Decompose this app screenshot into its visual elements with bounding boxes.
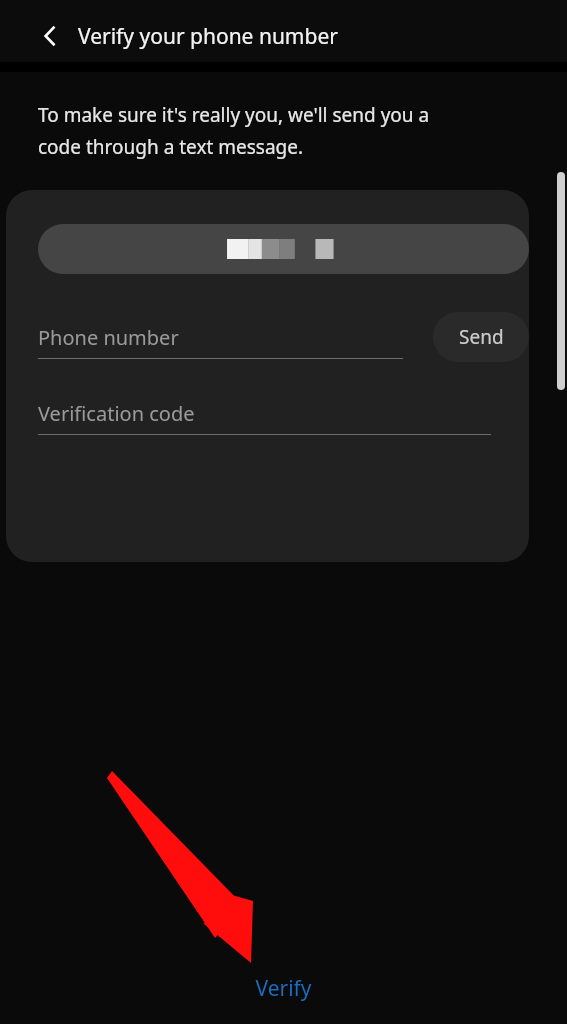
button[interactable]: Country selector <box>38 224 529 274</box>
button[interactable]: Verify <box>0 952 567 1024</box>
staticText: To make sure it's really you, we'll send… <box>38 102 430 160</box>
button[interactable]: Back <box>26 12 74 60</box>
staticText: Verify <box>255 974 312 1003</box>
button[interactable]: Phone number <box>38 316 421 359</box>
staticText: Verify your phone number <box>78 22 338 51</box>
staticText: Verification code <box>38 400 195 427</box>
button[interactable]: Send <box>433 312 529 362</box>
button[interactable]: Verification code <box>38 392 491 435</box>
staticText: Phone number <box>38 324 179 351</box>
staticText: Send <box>459 324 504 350</box>
